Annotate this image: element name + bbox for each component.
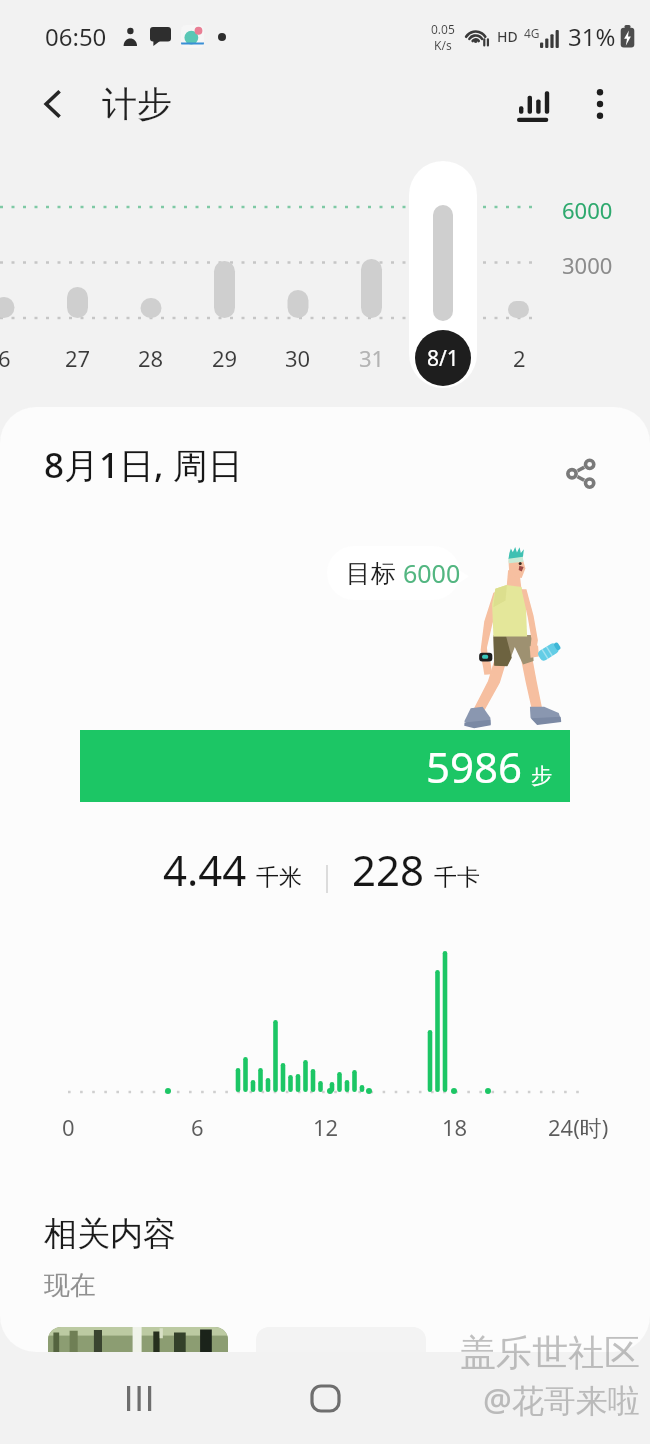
staticText: 5986	[426, 738, 523, 795]
staticText: 29	[212, 343, 238, 373]
button[interactable]: Share	[553, 445, 609, 501]
staticText: 千米	[256, 863, 302, 892]
staticText: 步	[531, 763, 552, 789]
staticText: 12	[313, 1112, 339, 1142]
staticText: 0.05	[431, 21, 455, 37]
staticText: 2	[513, 343, 526, 373]
button[interactable]	[48, 1327, 228, 1352]
button[interactable]: Trends chart	[501, 71, 567, 137]
staticText: HD	[497, 27, 518, 46]
staticText: K/s	[434, 37, 452, 53]
staticText: 目标	[346, 558, 396, 589]
staticText: 4G	[524, 25, 540, 41]
staticText: @花哥来啦	[483, 1378, 640, 1422]
staticText: 228	[352, 841, 425, 898]
staticText: 计步	[102, 82, 172, 126]
staticText: 6000	[562, 195, 613, 225]
button[interactable]: Back	[0, 61, 100, 147]
staticText: 6000	[403, 556, 460, 590]
button[interactable]: More options	[567, 71, 633, 137]
staticText: 30	[285, 343, 311, 373]
button[interactable]: Back	[370, 1352, 650, 1444]
staticText: 8月1日, 周日	[44, 441, 243, 489]
staticText: 千卡	[434, 863, 480, 892]
button[interactable]: Home	[280, 1352, 370, 1444]
staticText: 8/1	[427, 344, 459, 373]
staticText: 6	[191, 1112, 204, 1142]
staticText: 6	[0, 343, 11, 373]
staticText: 06:50	[45, 20, 107, 53]
button[interactable]: 5986	[80, 730, 570, 802]
staticText: 31	[359, 343, 385, 373]
staticText: 24(时)	[548, 1112, 609, 1142]
staticText: 31%	[568, 20, 616, 53]
staticText: 3000	[562, 250, 613, 280]
staticText: 28	[138, 343, 164, 373]
staticText: 18	[442, 1112, 468, 1142]
staticText: 4.44	[163, 841, 247, 898]
staticText: 盖乐世社区	[460, 1330, 640, 1375]
staticText: 0	[62, 1112, 75, 1142]
staticText: 27	[65, 343, 91, 373]
button[interactable]: Selected day 8/1	[409, 161, 477, 388]
staticText: 现在	[44, 1269, 96, 1302]
button[interactable]: Recent apps	[0, 1352, 280, 1444]
staticText: 相关内容	[44, 1213, 176, 1255]
